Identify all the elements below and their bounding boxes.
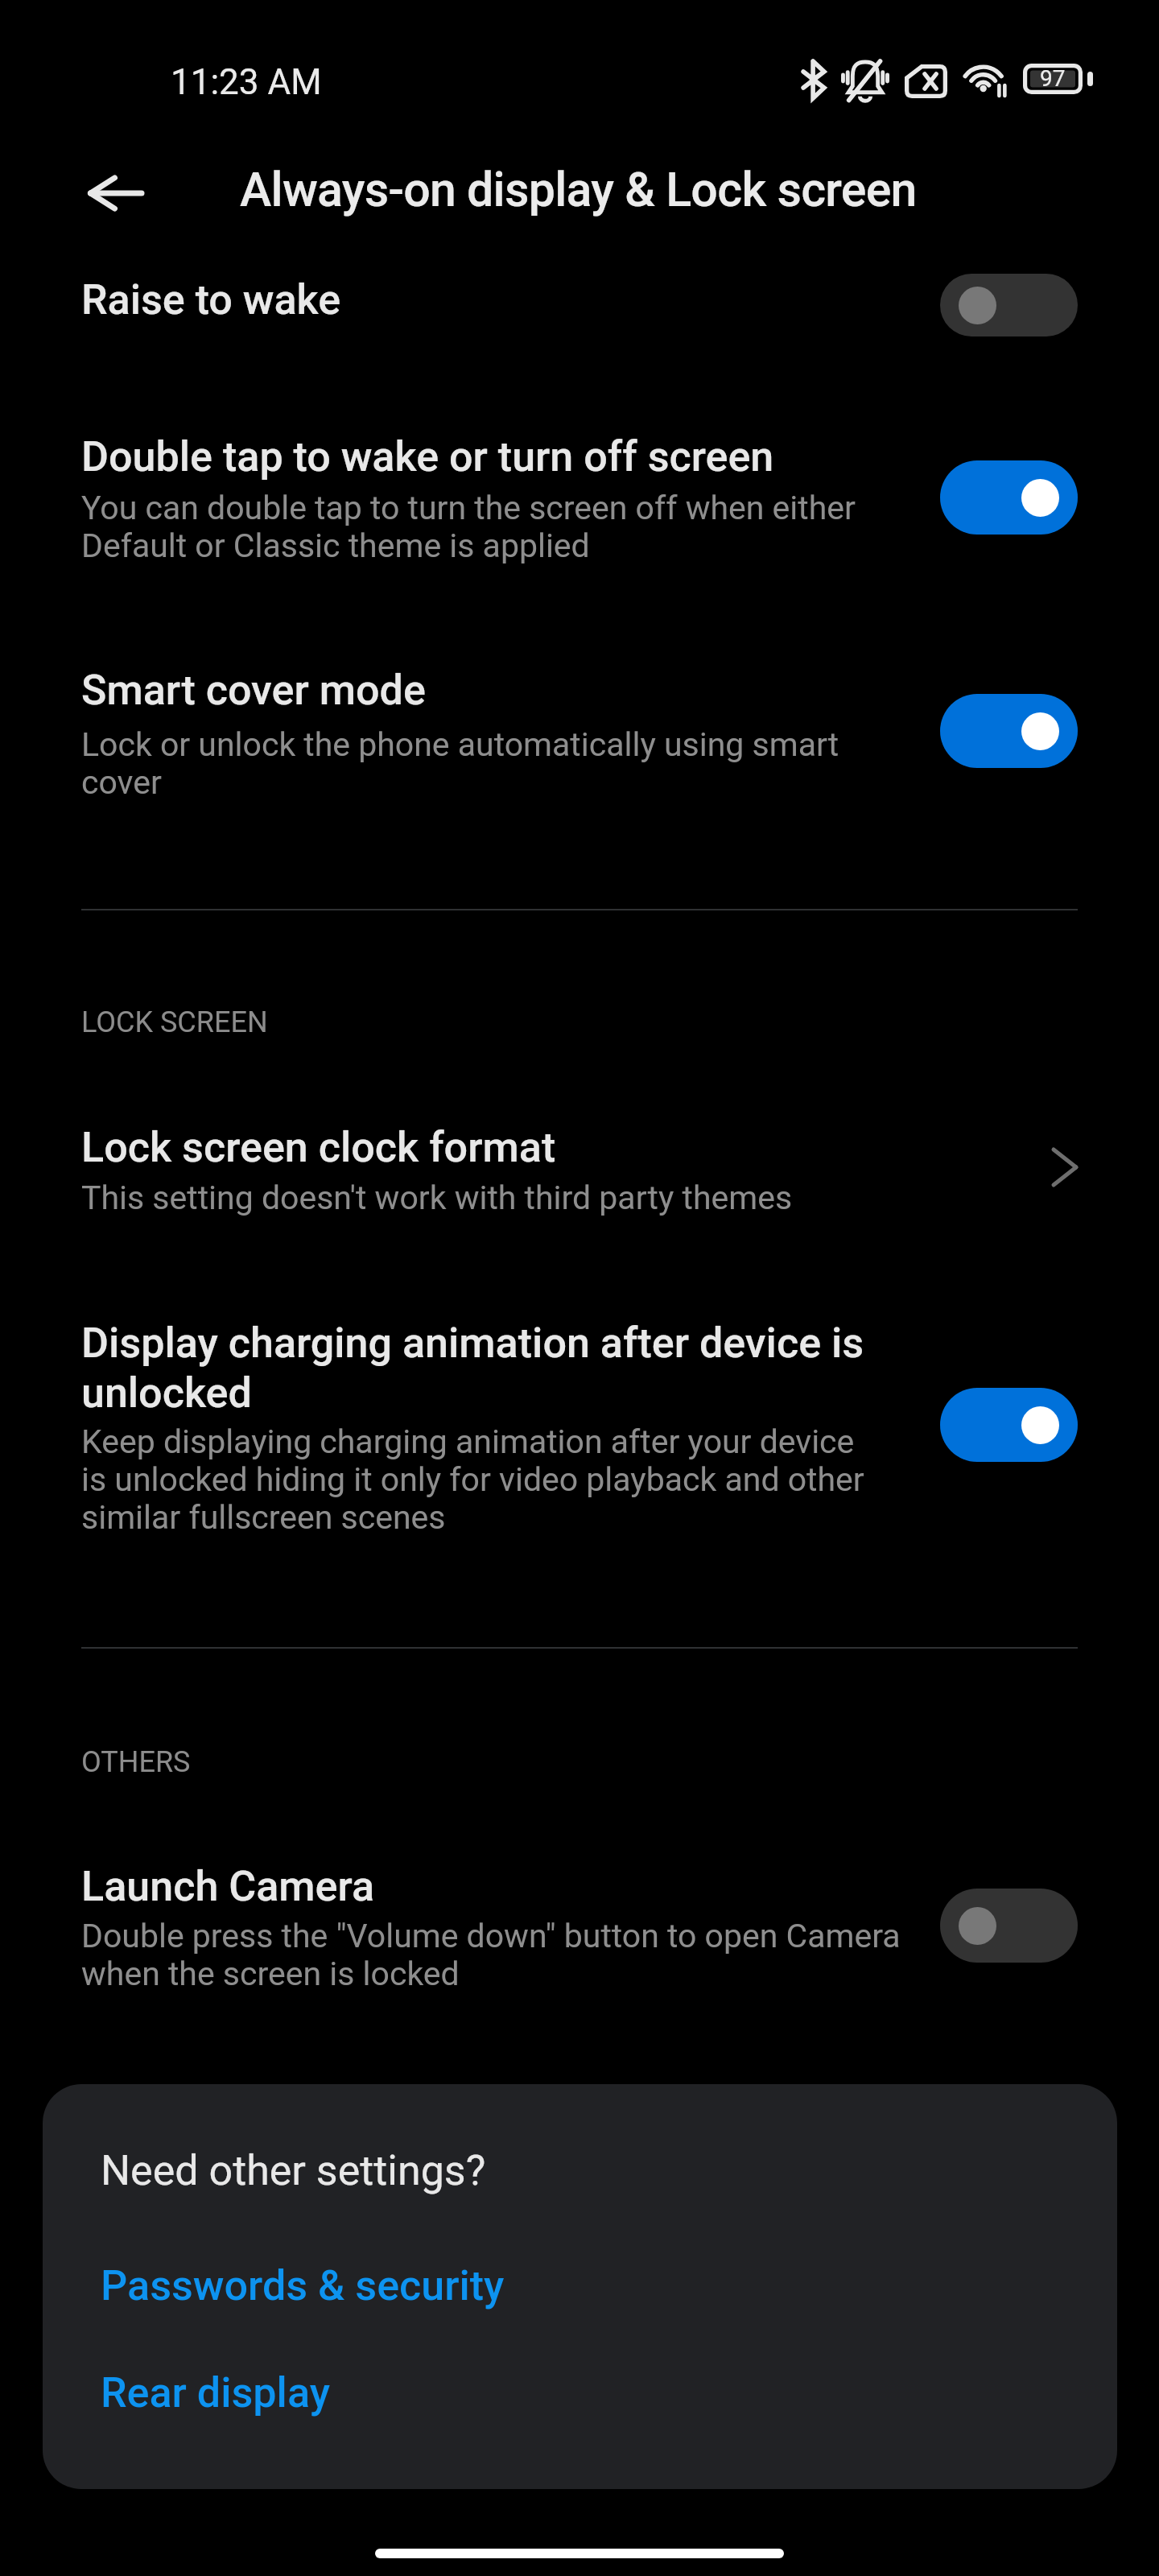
button[interactable]: Switch on <box>940 460 1078 535</box>
button[interactable]: Navigate back <box>59 142 171 254</box>
staticText: LOCK SCREEN <box>81 1005 268 1039</box>
staticText: 11:23 AM <box>171 61 322 103</box>
button[interactable]: Rear display <box>101 2366 342 2419</box>
staticText: Lock screen clock format <box>81 1123 556 1172</box>
staticText: Smart cover mode <box>81 666 426 715</box>
button[interactable]: Switch on <box>940 1388 1078 1462</box>
button[interactable] <box>0 612 1159 821</box>
button[interactable] <box>0 378 1159 588</box>
staticText: unlocked <box>81 1368 252 1418</box>
staticText: Rear display <box>101 2368 330 2417</box>
staticText: is unlocked hiding it only for video pla… <box>81 1460 864 1499</box>
staticText: Keep displaying charging animation after… <box>81 1422 855 1461</box>
staticText: cover <box>81 763 162 802</box>
staticText: Launch Camera <box>81 1862 375 1911</box>
button[interactable] <box>0 1827 1159 2061</box>
staticText: Double press the "Volume down" button to… <box>81 1917 901 1955</box>
staticText: Double tap to wake or turn off screen <box>81 432 774 481</box>
staticText: You can double tap to turn the screen of… <box>81 489 856 527</box>
staticText: Always-on display & Lock screen <box>240 162 917 217</box>
button[interactable] <box>0 225 1159 596</box>
button[interactable] <box>0 1280 1159 1554</box>
staticText: when the screen is locked <box>81 1955 460 1993</box>
staticText: This setting doesn't work with third par… <box>81 1179 793 1217</box>
staticText: Passwords & security <box>101 2261 505 2310</box>
staticText: OTHERS <box>81 1745 191 1779</box>
button[interactable]: Switch off <box>940 274 1078 336</box>
staticText: Default or Classic theme is applied <box>81 526 590 565</box>
button[interactable]: Switch off <box>940 1889 1078 1963</box>
button[interactable] <box>0 1079 1159 1264</box>
staticText: similar fullscreen scenes <box>81 1498 446 1537</box>
button[interactable]: Passwords & security <box>101 2259 511 2312</box>
staticText: 97 <box>1040 65 1066 92</box>
staticText: Raise to wake <box>81 275 341 324</box>
staticText: Need other settings? <box>101 2146 486 2195</box>
button[interactable]: Switch on <box>940 694 1078 768</box>
staticText: Lock or unlock the phone automatically u… <box>81 725 839 764</box>
staticText: Display charging animation after device … <box>81 1319 864 1368</box>
